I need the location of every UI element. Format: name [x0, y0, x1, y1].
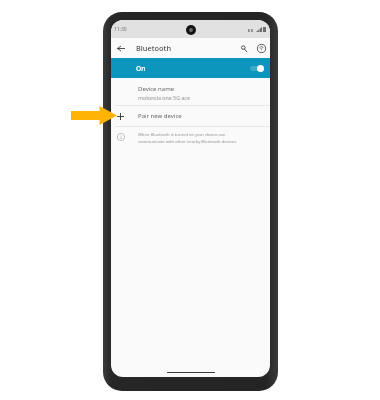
button[interactable]: Pair new device — [111, 106, 270, 126]
button[interactable]: Search — [237, 41, 251, 55]
button[interactable]: Device name — [111, 78, 270, 105]
button[interactable]: Back — [111, 38, 131, 58]
staticText: When Bluetooth is turned on your device … — [138, 132, 238, 144]
button[interactable]: On — [111, 58, 270, 78]
button[interactable]: Help — [254, 41, 268, 55]
staticText: On — [136, 64, 250, 73]
staticText: Pair new device — [138, 112, 182, 120]
staticText: Device name — [138, 85, 175, 93]
staticText: 11:30 — [114, 26, 127, 33]
staticText: Bluetooth — [136, 43, 242, 53]
staticText: motorola one 5G ace — [138, 94, 190, 101]
